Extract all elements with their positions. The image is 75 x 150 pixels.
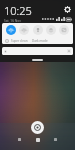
- button[interactable]: Quick setting toggle: [33, 25, 43, 35]
- staticText: Sat, 16 Nov: [4, 19, 21, 23]
- button[interactable]: Recents: [52, 136, 59, 143]
- button[interactable]: Quick setting toggle: [46, 25, 56, 35]
- button[interactable]: Settings: [63, 5, 72, 14]
- button[interactable]: Brightness slider: [2, 47, 73, 55]
- button[interactable]: Quick setting toggle: [59, 25, 69, 35]
- staticText: Super clean: [11, 39, 28, 43]
- button[interactable]: Camera: [31, 121, 44, 134]
- button[interactable]: Back: [16, 136, 23, 143]
- staticText: Dark mode: [32, 39, 48, 43]
- button[interactable]: Home: [34, 136, 41, 143]
- button[interactable]: Quick setting toggle: [19, 25, 29, 35]
- button[interactable]: Quick setting toggle: [6, 25, 16, 35]
- staticText: 10:25: [4, 3, 32, 18]
- button[interactable]: Expand quick settings: [32, 59, 43, 61]
